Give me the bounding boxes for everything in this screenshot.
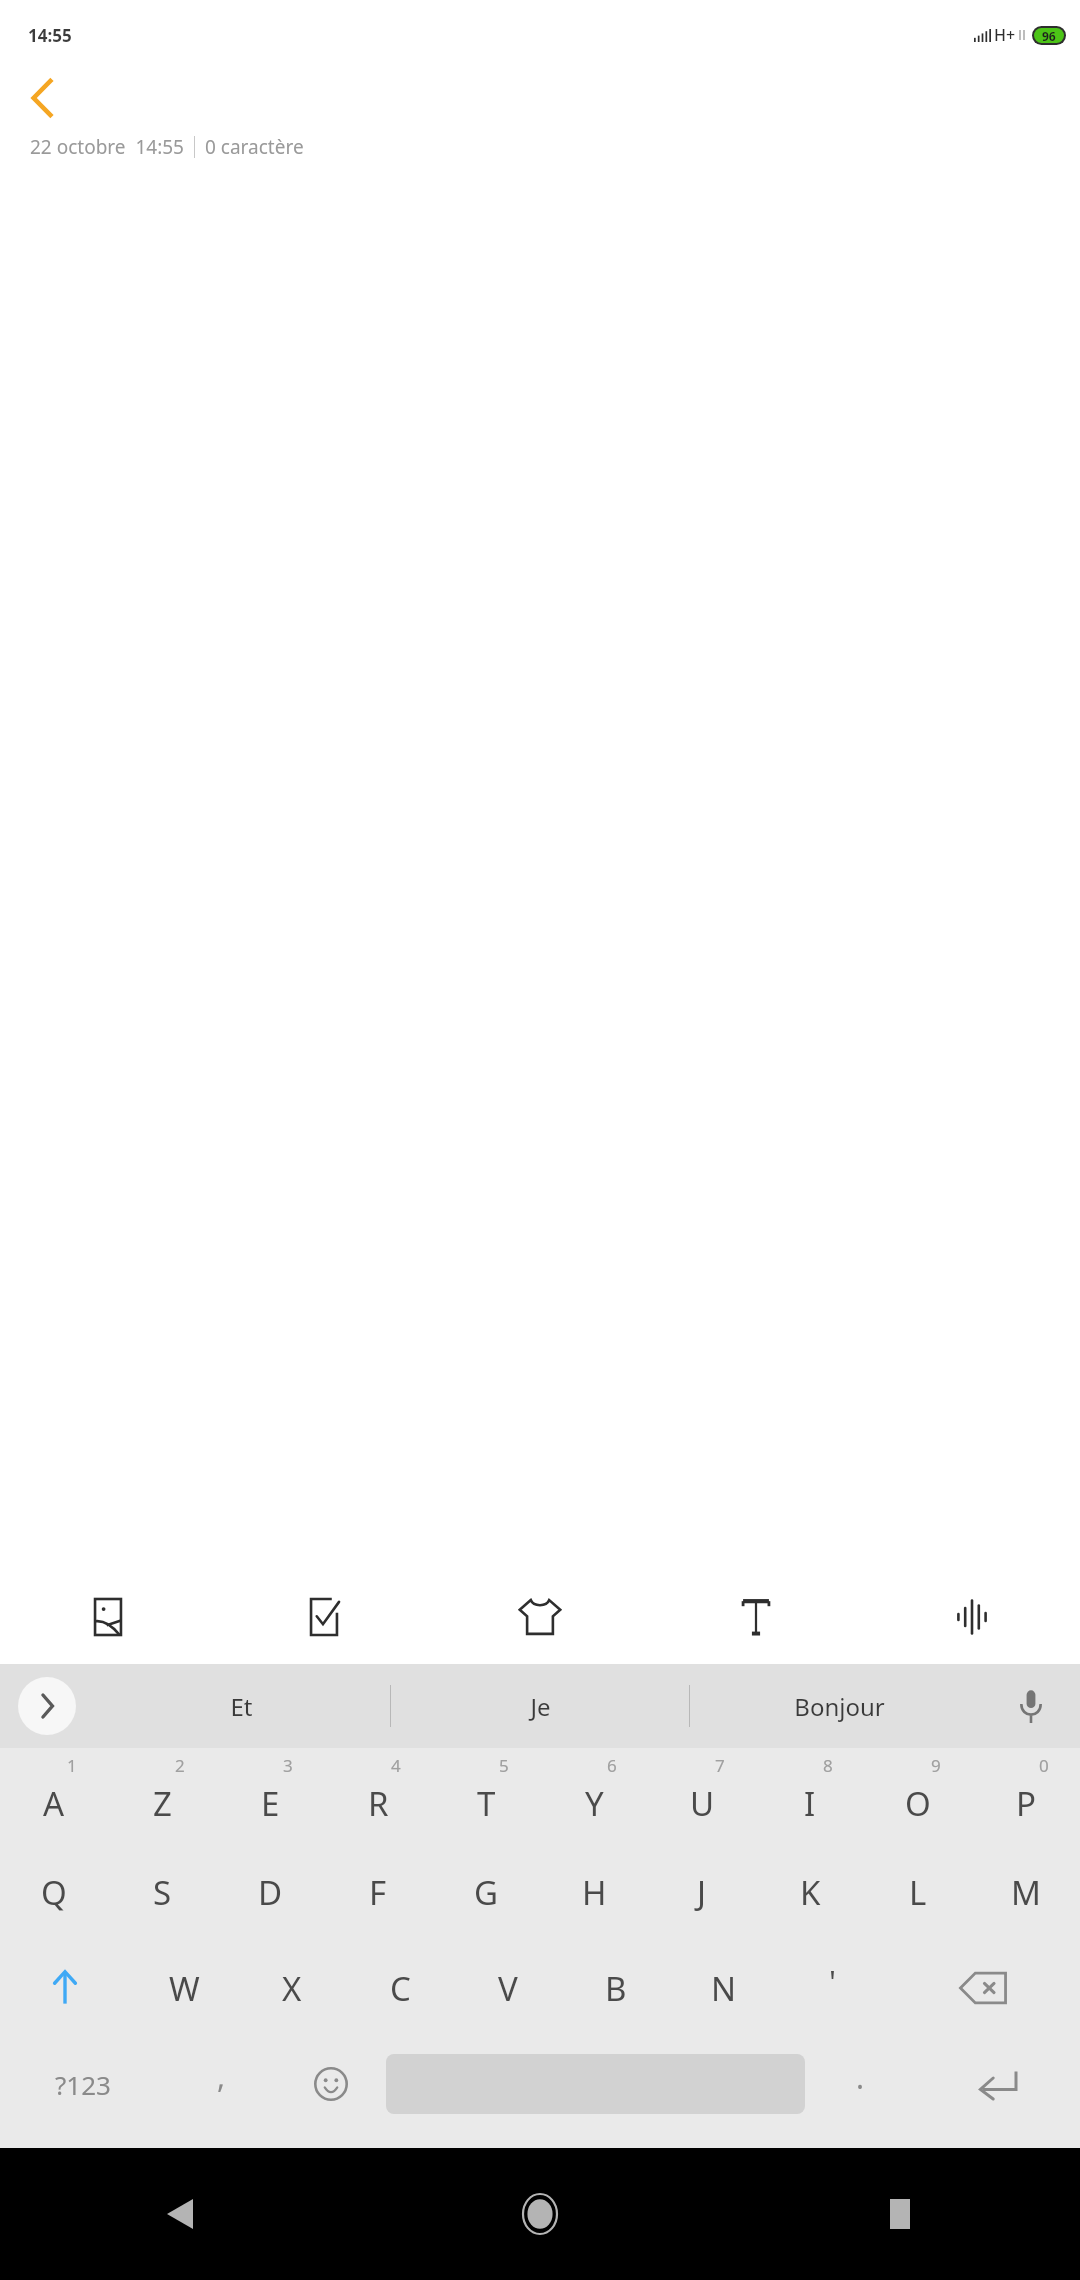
button[interactable]: Voice — [864, 1569, 1080, 1664]
button[interactable]: Style — [432, 1569, 648, 1664]
staticText: R — [368, 1781, 389, 1826]
staticText: M — [1011, 1870, 1041, 1915]
button[interactable]: K — [756, 1844, 864, 1940]
button[interactable]: X — [238, 1940, 346, 2036]
staticText: P — [1016, 1781, 1036, 1826]
staticText: V — [498, 1966, 518, 2011]
staticText: 9 — [931, 1754, 941, 1777]
staticText: 6 — [607, 1754, 617, 1777]
staticText: S — [153, 1870, 172, 1915]
staticText: 0 — [1039, 1754, 1049, 1777]
button[interactable]: 4 — [324, 1748, 432, 1844]
button[interactable]: Checklist — [216, 1569, 432, 1664]
staticText: 3 — [283, 1754, 293, 1777]
button[interactable]: 7 — [648, 1748, 756, 1844]
staticText: K — [800, 1870, 821, 1915]
staticText: Z — [153, 1781, 172, 1826]
button[interactable]: Home — [360, 2148, 720, 2280]
staticText: 96 — [1042, 28, 1056, 43]
staticText: ?123 — [55, 2067, 111, 2102]
staticText: H — [582, 1870, 607, 1915]
button[interactable]: F — [324, 1844, 432, 1940]
button[interactable]: Text format — [648, 1569, 864, 1664]
button[interactable]: J — [648, 1844, 756, 1940]
button[interactable]: Back — [14, 70, 70, 126]
button[interactable]: 2 — [108, 1748, 216, 1844]
button[interactable]: 9 — [864, 1748, 972, 1844]
button[interactable]: C — [346, 1940, 454, 2036]
staticText: B — [605, 1966, 627, 2011]
staticText: O — [905, 1781, 931, 1826]
button[interactable]: Recents — [720, 2148, 1080, 2280]
button[interactable]: W — [130, 1940, 238, 2036]
staticText: J — [697, 1870, 707, 1915]
button[interactable]: S — [108, 1844, 216, 1940]
staticText: 5 — [499, 1754, 509, 1777]
button[interactable]: Q — [0, 1844, 108, 1940]
button[interactable]: Backspace — [886, 1940, 1080, 2036]
staticText: A — [43, 1781, 65, 1826]
button[interactable]: 3 — [216, 1748, 324, 1844]
staticText: ' — [829, 1960, 836, 2002]
button[interactable]: H — [540, 1844, 648, 1940]
button[interactable]: , — [166, 2036, 276, 2132]
staticText: 2 — [175, 1754, 185, 1777]
staticText: I — [804, 1781, 816, 1826]
staticText: F — [369, 1870, 387, 1915]
staticText: Y — [585, 1781, 604, 1826]
button[interactable]: Bonjour — [690, 1664, 988, 1748]
button[interactable]: G — [432, 1844, 540, 1940]
button[interactable]: 8 — [756, 1748, 864, 1844]
staticText: T — [477, 1781, 496, 1826]
staticText: U — [690, 1781, 715, 1826]
button[interactable]: 6 — [540, 1748, 648, 1844]
button[interactable]: More — [18, 1677, 76, 1735]
staticText: , — [217, 2056, 226, 2097]
button[interactable]: V — [454, 1940, 562, 2036]
button[interactable]: Shift — [0, 1940, 130, 2036]
button[interactable]: N — [670, 1940, 778, 2036]
button[interactable]: 5 — [432, 1748, 540, 1844]
button[interactable]: ' — [778, 1940, 886, 2036]
staticText: G — [474, 1870, 499, 1915]
staticText: D — [258, 1870, 283, 1915]
staticText: Q — [41, 1870, 67, 1915]
button[interactable]: Et — [92, 1664, 390, 1748]
staticText: L — [909, 1870, 927, 1915]
button[interactable]: Back — [0, 2148, 360, 2280]
staticText: Je — [530, 1690, 551, 1723]
staticText: 1 — [67, 1754, 77, 1777]
staticText: N — [711, 1966, 737, 2011]
staticText: 22 octobre 14:55 — [30, 134, 184, 160]
staticText: 0 caractère — [205, 134, 304, 160]
staticText: H+ — [994, 24, 1016, 46]
button[interactable]: 0 — [972, 1748, 1080, 1844]
staticText: 4 — [391, 1754, 401, 1777]
staticText: . — [856, 2057, 865, 2098]
button[interactable]: Je — [391, 1664, 689, 1748]
staticText: C — [390, 1966, 411, 2011]
button[interactable]: Emoji — [276, 2036, 386, 2132]
button[interactable]: D — [216, 1844, 324, 1940]
button[interactable]: 1 — [0, 1748, 108, 1844]
button[interactable]: Enter — [915, 2036, 1080, 2132]
button[interactable]: B — [562, 1940, 670, 2036]
staticText: 7 — [715, 1754, 725, 1777]
button[interactable]: Voice input — [988, 1664, 1074, 1748]
staticText: 14:55 — [28, 24, 72, 47]
button[interactable]: M — [972, 1844, 1080, 1940]
button[interactable]: L — [864, 1844, 972, 1940]
staticText: 8 — [823, 1754, 833, 1777]
staticText: W — [169, 1966, 200, 2011]
staticText: Bonjour — [794, 1690, 885, 1723]
staticText: Et — [230, 1690, 253, 1723]
button[interactable]: Image — [0, 1569, 216, 1664]
staticText: X — [282, 1966, 302, 2011]
button[interactable]: ?123 — [0, 2036, 166, 2132]
staticText: E — [261, 1781, 280, 1826]
button[interactable]: . — [805, 2036, 915, 2132]
